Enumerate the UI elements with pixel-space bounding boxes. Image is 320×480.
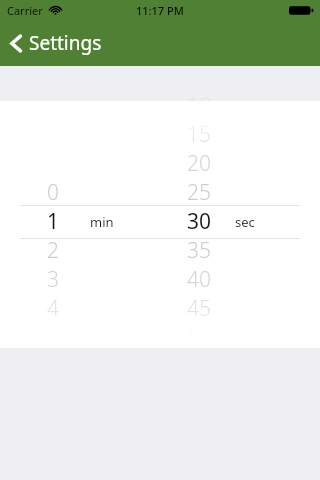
button[interactable]: 1 [47,206,105,236]
staticText: 0 [47,178,59,207]
staticText: 30 [187,207,212,236]
button[interactable]: 35 [187,235,245,265]
button[interactable]: 45 [187,293,245,323]
staticText: 25 [187,178,211,207]
staticText: 10 [187,91,211,120]
staticText: Carrier [7,3,43,18]
staticText: 11:17 PM [136,3,184,18]
button[interactable]: 40 [187,264,245,294]
staticText: 5 [47,323,59,352]
staticText: sec [235,213,255,231]
staticText: 40 [187,265,211,294]
staticText: 50 [187,323,211,352]
button[interactable]: 30 [187,206,245,236]
button[interactable]: 5 [47,322,105,352]
staticText: 15 [187,120,211,149]
button[interactable]: 4 [47,293,105,323]
staticText: Settings [29,30,102,56]
button[interactable]: 15 [187,119,245,149]
button[interactable]: 20 [187,148,245,178]
staticText: 20 [187,149,211,178]
staticText: 35 [187,236,211,265]
button[interactable]: 3 [47,264,105,294]
staticText: 2 [47,236,59,265]
staticText: 45 [187,294,211,323]
staticText: 4 [47,294,59,323]
button[interactable]: 50 [187,322,245,352]
button[interactable]: 2 [47,235,105,265]
button[interactable]: 25 [187,177,245,207]
other: Back [10,34,22,53]
button[interactable]: Back [7,27,105,59]
staticText: min [90,213,114,231]
staticText: 3 [47,265,59,294]
staticText: 1 [47,207,60,236]
button[interactable]: 10 [187,90,245,120]
button[interactable]: 0 [47,177,105,207]
